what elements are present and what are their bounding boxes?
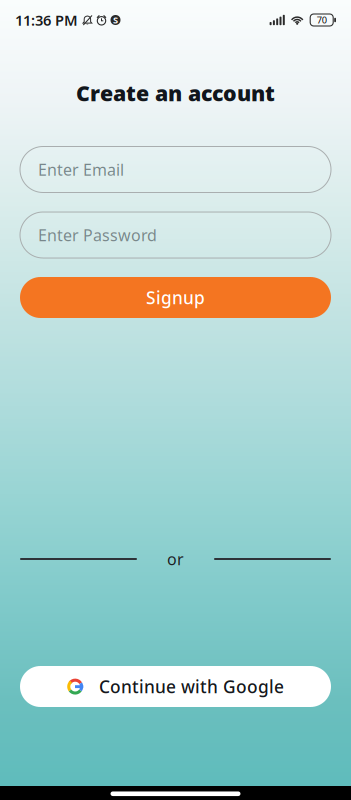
staticText: Create an account [76, 79, 275, 107]
staticText: 11:36 PM [15, 10, 78, 30]
staticText: 70 [317, 14, 327, 26]
staticText: Enter Password [38, 224, 157, 246]
button[interactable]: Enter Email [20, 146, 331, 192]
staticText: Continue with Google [99, 675, 284, 698]
staticText: Enter Email [38, 159, 124, 180]
button[interactable]: Signup [20, 277, 331, 318]
button[interactable]: Continue with Google [20, 666, 331, 707]
staticText: Signup [146, 286, 205, 309]
button[interactable]: Enter Password [20, 212, 331, 258]
staticText: S [113, 14, 118, 26]
staticText: or [167, 548, 184, 570]
